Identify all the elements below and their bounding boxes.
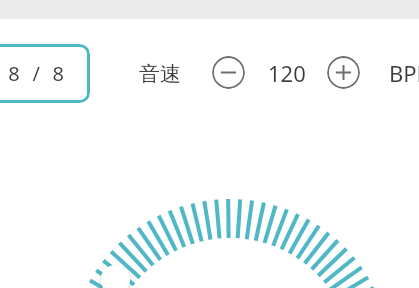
staticText: 8 / 8 [8, 60, 68, 87]
staticText: BPM [389, 58, 419, 88]
button[interactable]: 120 [268, 58, 306, 88]
button[interactable]: Tempo dial [64, 190, 419, 288]
button[interactable]: 音速 [139, 61, 181, 87]
button[interactable]: Increase tempo [327, 56, 360, 89]
button[interactable]: 8 / 8 [0, 44, 90, 103]
button[interactable]: Decrease tempo [212, 56, 245, 89]
